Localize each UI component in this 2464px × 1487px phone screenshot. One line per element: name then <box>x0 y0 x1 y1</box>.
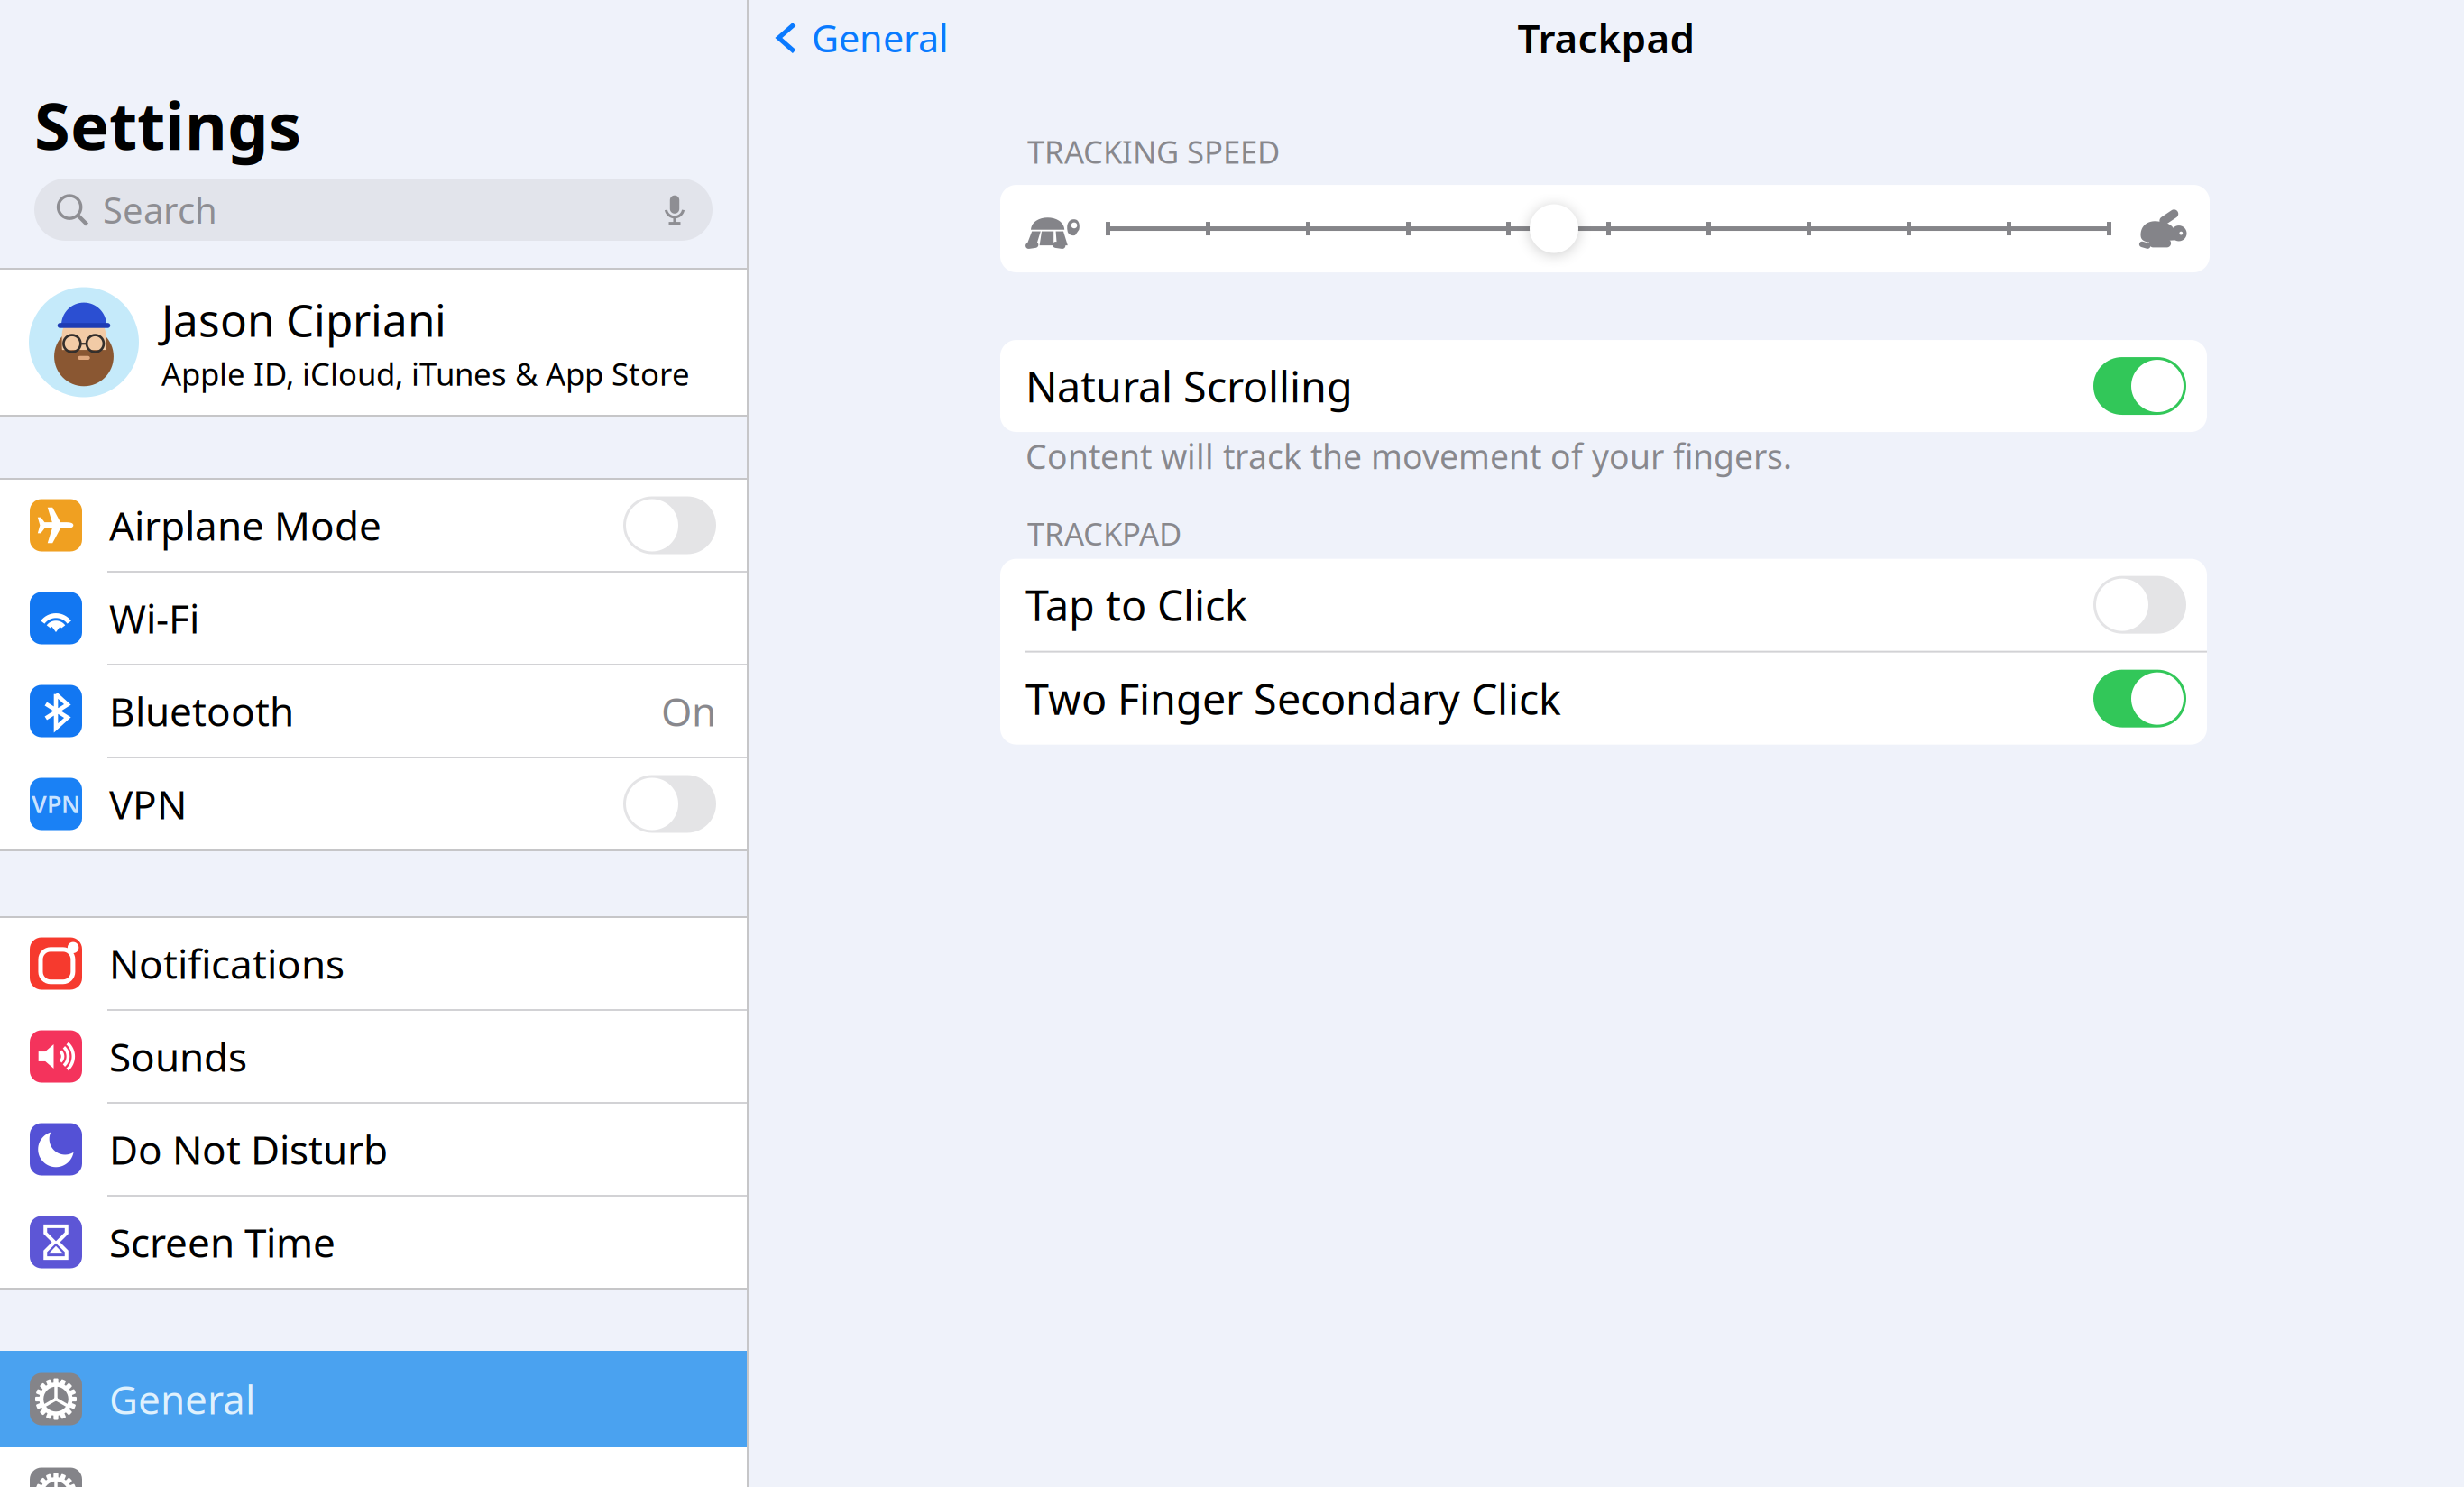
staticText: Tap to Click <box>1025 577 1247 633</box>
staticText: On <box>661 685 716 737</box>
staticText: TRACKPAD <box>1027 513 1181 554</box>
staticText: Jason Cipriani <box>161 290 446 349</box>
button[interactable]: Two Finger Secondary Click <box>1000 653 2207 744</box>
staticText: TRACKING SPEED <box>1027 131 1280 172</box>
button[interactable]: Tap to Click <box>1000 559 2207 651</box>
button[interactable]: General <box>749 2 949 73</box>
staticText: Trackpad <box>1517 12 1695 64</box>
staticText: Search <box>103 186 217 234</box>
staticText: General <box>812 13 949 63</box>
button[interactable]: Control Center <box>0 1447 747 1487</box>
staticText: Content will track the movement of your … <box>1025 434 1792 478</box>
staticText: Airplane Mode <box>109 499 382 552</box>
button[interactable]: Airplane Mode <box>0 480 747 571</box>
button[interactable]: Wi-Fi <box>0 573 747 664</box>
staticText: VPN <box>109 778 187 830</box>
staticText: Wi-Fi <box>109 592 199 644</box>
staticText: Screen Time <box>109 1216 336 1269</box>
button[interactable]: Natural Scrolling <box>1000 340 2207 432</box>
button[interactable]: Screen Time <box>0 1197 747 1288</box>
staticText: Apple ID, iCloud, iTunes & App Store <box>161 353 690 394</box>
staticText: Bluetooth <box>109 685 294 737</box>
staticText: Two Finger Secondary Click <box>1025 671 1561 727</box>
button[interactable]: Bluetooth <box>0 665 747 757</box>
staticText: Natural Scrolling <box>1025 358 1353 414</box>
button[interactable]: Jason Cipriani <box>0 270 747 415</box>
button[interactable]: VPN <box>0 758 747 849</box>
staticText: Settings <box>34 82 301 168</box>
staticText: VPN <box>32 788 80 820</box>
button[interactable]: Tracking speed <box>1530 204 1578 253</box>
button[interactable]: Notifications <box>0 918 747 1009</box>
button[interactable]: Do Not Disturb <box>0 1104 747 1195</box>
button[interactable]: Search <box>34 179 713 241</box>
staticText: Sounds <box>109 1030 247 1083</box>
button[interactable]: Sounds <box>0 1011 747 1102</box>
button[interactable]: General <box>0 1351 747 1447</box>
staticText: Do Not Disturb <box>109 1123 388 1176</box>
staticText: Notifications <box>109 937 345 990</box>
staticText: General <box>109 1373 255 1425</box>
